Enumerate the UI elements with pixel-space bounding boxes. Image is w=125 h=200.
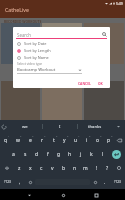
staticText: OK	[98, 81, 103, 85]
button[interactable]: w	[12, 133, 24, 147]
staticText: .	[104, 179, 106, 186]
button[interactable]: I	[43, 120, 77, 133]
staticText: h	[68, 151, 72, 158]
button[interactable]: ,	[15, 175, 25, 189]
staticText: q	[4, 137, 8, 144]
button[interactable]: thanks	[78, 120, 112, 133]
staticText: e	[29, 137, 32, 144]
staticText: u	[74, 137, 78, 144]
button[interactable]: Workout	[42, 81, 82, 120]
button[interactable]: x	[25, 161, 36, 175]
button[interactable]: b	[58, 161, 69, 175]
button[interactable]: Backspace	[114, 133, 125, 147]
staticText: z	[18, 165, 21, 172]
staticText: Search	[17, 32, 31, 38]
button[interactable]: n	[69, 161, 80, 175]
button[interactable]: Workout	[1, 23, 40, 81]
button[interactable]: a	[7, 147, 19, 161]
button[interactable]: t	[48, 133, 59, 147]
button[interactable]: r	[36, 133, 48, 147]
staticText: 5:49	[116, 1, 123, 6]
button[interactable]: Workout	[1, 81, 40, 120]
button[interactable]: m	[80, 161, 91, 175]
staticText: I	[59, 124, 61, 130]
button[interactable]: f	[42, 147, 53, 161]
staticText: l	[102, 151, 104, 158]
staticText: k	[90, 151, 93, 158]
button[interactable]: Emoji	[25, 175, 35, 189]
button[interactable]: o	[92, 133, 103, 147]
staticText: Select video type	[17, 62, 43, 66]
button[interactable]: ?	[102, 161, 113, 175]
staticText: y	[63, 137, 66, 144]
staticText: 3	[32, 134, 34, 137]
button[interactable]: .	[100, 175, 110, 189]
staticText: n	[73, 165, 77, 172]
staticText: ?	[106, 165, 109, 172]
staticText: we	[22, 124, 28, 130]
button[interactable]: e	[24, 133, 36, 147]
staticText: Workout	[56, 71, 68, 75]
staticText: CANCEL	[78, 81, 91, 85]
button[interactable]: Sort by Length	[13, 47, 110, 54]
button[interactable]: l	[97, 147, 108, 161]
button[interactable]: OK	[96, 79, 105, 87]
button[interactable]: s	[19, 147, 31, 161]
button[interactable]: Sort by Date	[13, 40, 110, 47]
button[interactable]: CANCEL	[76, 79, 93, 87]
button[interactable]: Sort by Name	[13, 54, 110, 61]
button[interactable]: h	[64, 147, 75, 161]
staticText: 5	[56, 134, 58, 137]
staticText: c	[40, 165, 43, 172]
button[interactable]: Home	[58, 190, 68, 200]
button[interactable]: Workout	[84, 23, 124, 81]
button[interactable]: p	[103, 133, 114, 147]
button[interactable]: Back	[24, 190, 34, 200]
button[interactable]: Shift	[0, 161, 13, 175]
button[interactable]: y	[59, 133, 70, 147]
staticText: p	[107, 137, 111, 144]
button[interactable]: c	[36, 161, 47, 175]
button[interactable]: Enter	[108, 147, 125, 161]
staticText: CatheLive	[5, 6, 29, 13]
button[interactable]: Voice input	[90, 175, 100, 189]
staticText: i	[86, 137, 88, 144]
staticText: 1	[8, 134, 10, 137]
button[interactable]: j	[75, 147, 86, 161]
staticText: g	[57, 151, 61, 158]
staticText: 0	[111, 134, 113, 137]
button[interactable]: ?123	[0, 175, 15, 189]
staticText: ?123	[114, 180, 121, 184]
staticText: Workout	[15, 71, 27, 75]
button[interactable]: Bootcamp Workout	[17, 67, 82, 74]
staticText: r	[41, 137, 44, 144]
button[interactable]: g	[53, 147, 64, 161]
button[interactable]: i	[81, 133, 92, 147]
button[interactable]: Workout	[42, 23, 82, 81]
button[interactable]: More suggestions	[112, 120, 125, 133]
staticText: w	[16, 137, 20, 144]
staticText: Sort by Length	[24, 48, 51, 53]
button[interactable]: u	[70, 133, 81, 147]
staticText: thanks	[88, 124, 102, 130]
staticText: v	[51, 165, 54, 172]
button[interactable]: q	[0, 133, 12, 147]
staticText: ,	[19, 179, 21, 186]
button[interactable]: Delete	[113, 161, 125, 175]
button[interactable]: ?123	[110, 175, 125, 189]
button[interactable]: Search	[102, 32, 107, 37]
button[interactable]: d	[31, 147, 42, 161]
button[interactable]: k	[86, 147, 97, 161]
staticText: s	[24, 151, 27, 158]
button[interactable]: z	[13, 161, 25, 175]
button[interactable]: Workout	[84, 81, 124, 120]
button[interactable]: Google	[0, 120, 7, 133]
staticText: 6	[67, 134, 69, 137]
button[interactable]: v	[47, 161, 58, 175]
staticText: d	[35, 151, 39, 158]
button[interactable]: we	[7, 120, 42, 133]
button[interactable]: !	[91, 161, 102, 175]
button[interactable]: Recents	[91, 190, 101, 200]
